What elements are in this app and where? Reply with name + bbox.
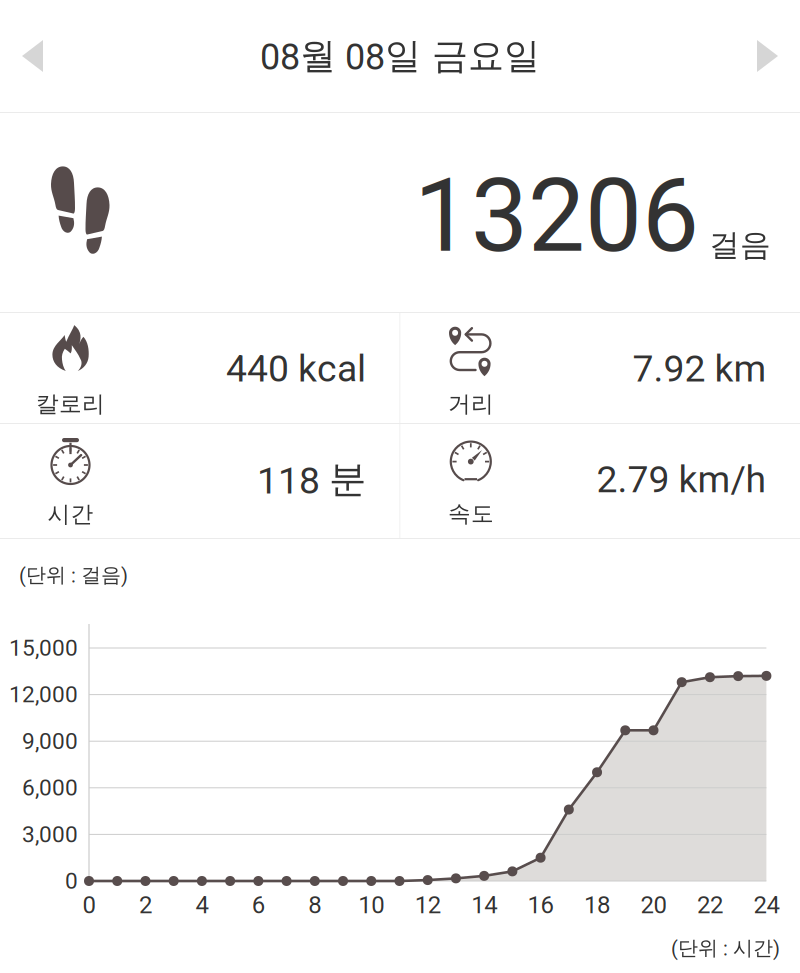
staticText: 440 kcal <box>226 347 366 390</box>
staticText: 14 <box>471 891 497 919</box>
staticText: 22 <box>697 891 723 919</box>
staticText: 18 <box>584 891 610 919</box>
staticText: 속도 <box>448 499 494 528</box>
staticText: 16 <box>528 891 554 919</box>
staticText: 0 <box>82 891 95 919</box>
staticText: 시간 <box>47 500 93 528</box>
staticText: 4 <box>195 891 208 919</box>
staticText: 24 <box>753 891 779 919</box>
staticText: 6,000 <box>22 774 78 801</box>
staticText: 2.79 km/h <box>596 457 766 501</box>
staticText: (단위 : 걸음) <box>19 562 128 588</box>
staticText: 15,000 <box>9 635 78 661</box>
staticText: 20 <box>640 891 666 919</box>
button[interactable]: Next day <box>688 28 800 84</box>
staticText: 9,000 <box>22 728 78 754</box>
staticText: 8 <box>308 891 321 919</box>
staticText: 08월 08일 금요일 <box>260 33 540 79</box>
staticText: 7.92 km <box>632 347 766 390</box>
staticText: 10 <box>358 891 384 919</box>
staticText: 12 <box>415 891 441 919</box>
staticText: (단위 : 시간) <box>671 935 780 961</box>
staticText: 13206 <box>414 157 699 275</box>
staticText: 칼로리 <box>36 390 105 418</box>
staticText: 거리 <box>448 390 494 418</box>
staticText: 6 <box>252 891 265 919</box>
staticText: 걸음 <box>709 226 771 264</box>
staticText: 0 <box>65 868 78 894</box>
staticText: 12,000 <box>9 681 78 708</box>
staticText: 118 분 <box>257 456 366 503</box>
staticText: 2 <box>139 891 152 919</box>
staticText: 3,000 <box>22 821 78 848</box>
button[interactable]: Previous day <box>0 28 112 84</box>
